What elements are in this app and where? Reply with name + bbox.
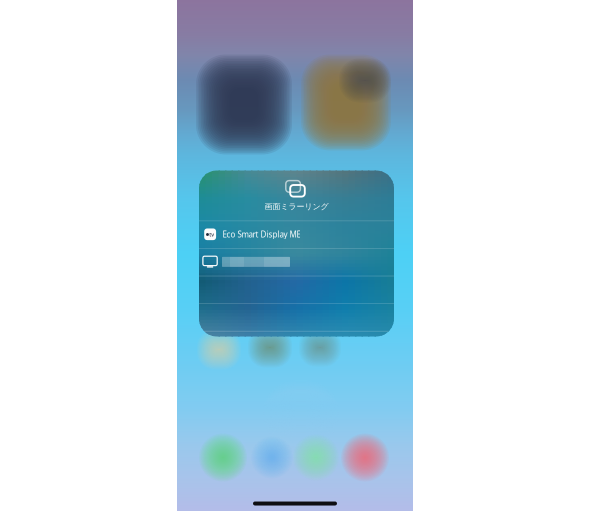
button[interactable]: tv [199,220,394,248]
staticText: 画面ミラーリング [264,202,328,211]
button[interactable] [199,248,394,276]
staticText: tv [209,231,214,238]
staticText: Eco Smart Display ME [222,229,300,240]
